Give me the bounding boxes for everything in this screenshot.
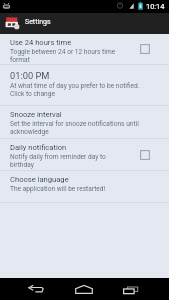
button[interactable]: Daily notification: [0, 139, 169, 170]
staticText: 01:00 PM: [10, 70, 50, 81]
button[interactable]: Toggle: [135, 145, 155, 165]
button[interactable]: Recent apps: [108, 278, 152, 300]
staticText: Notify daily from reminder day to birthd…: [10, 153, 129, 168]
staticText: Daily notification: [10, 143, 67, 152]
button[interactable]: Choose language: [0, 171, 169, 202]
staticText: 10:14: [146, 2, 165, 11]
button[interactable]: Toggle: [135, 39, 155, 59]
staticText: Choose language: [10, 175, 69, 184]
button[interactable]: Use 24 hours time: [0, 34, 169, 64]
staticText: Toggle between 24 or 12 hours time forma…: [10, 48, 129, 63]
staticText: Use 24 hours time: [10, 38, 72, 47]
button[interactable]: Back: [14, 278, 58, 300]
button[interactable]: Home: [62, 278, 106, 300]
staticText: Snooze interval: [10, 110, 62, 119]
staticText: Settings: [25, 18, 51, 26]
staticText: At what time of day you prefer to be not…: [10, 82, 140, 97]
button[interactable]: Snooze interval: [0, 106, 169, 138]
button[interactable]: 01:00 PM: [0, 65, 169, 105]
staticText: The application will be restarted!: [10, 185, 106, 193]
staticText: Set the interval for snooze notification…: [10, 120, 157, 135]
